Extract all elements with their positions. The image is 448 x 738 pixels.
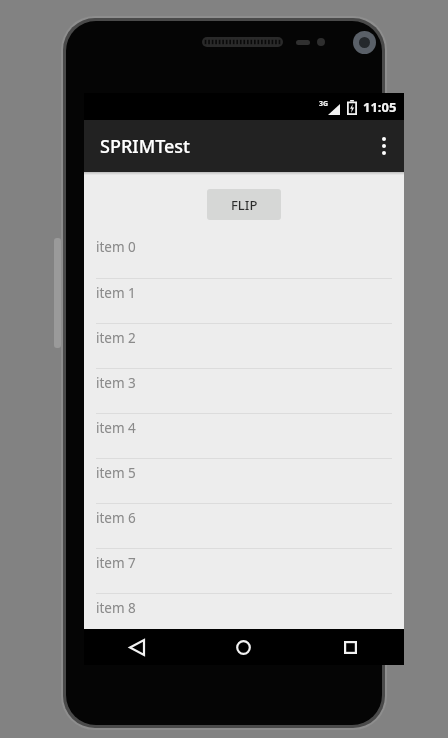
button[interactable]: item 6	[84, 504, 404, 548]
staticText: SPRIMTest	[100, 134, 190, 159]
button[interactable]: item 5	[84, 459, 404, 503]
staticText: item 4	[96, 419, 136, 437]
button[interactable]: Recent apps	[297, 629, 404, 665]
button[interactable]: FLIP	[207, 189, 281, 220]
staticText: item 1	[96, 284, 136, 302]
button[interactable]: item 0	[84, 233, 404, 278]
button[interactable]: More options	[364, 120, 404, 172]
staticText: item 6	[96, 509, 136, 527]
button[interactable]: item 8	[84, 594, 404, 629]
staticText: item 7	[96, 554, 136, 572]
staticText: item 8	[96, 599, 136, 617]
staticText: item 0	[96, 238, 136, 256]
button[interactable]: Home	[190, 629, 297, 665]
button[interactable]: item 3	[84, 369, 404, 413]
button[interactable]: Back	[84, 629, 190, 665]
staticText: 3G	[319, 99, 329, 109]
button[interactable]: item 7	[84, 549, 404, 593]
button[interactable]: item 1	[84, 279, 404, 323]
staticText: item 3	[96, 374, 136, 392]
staticText: 11:05	[363, 98, 397, 116]
button[interactable]: item 4	[84, 414, 404, 458]
button[interactable]: item 2	[84, 324, 404, 368]
staticText: item 5	[96, 464, 136, 482]
staticText: item 2	[96, 329, 136, 347]
staticText: FLIP	[231, 196, 258, 214]
